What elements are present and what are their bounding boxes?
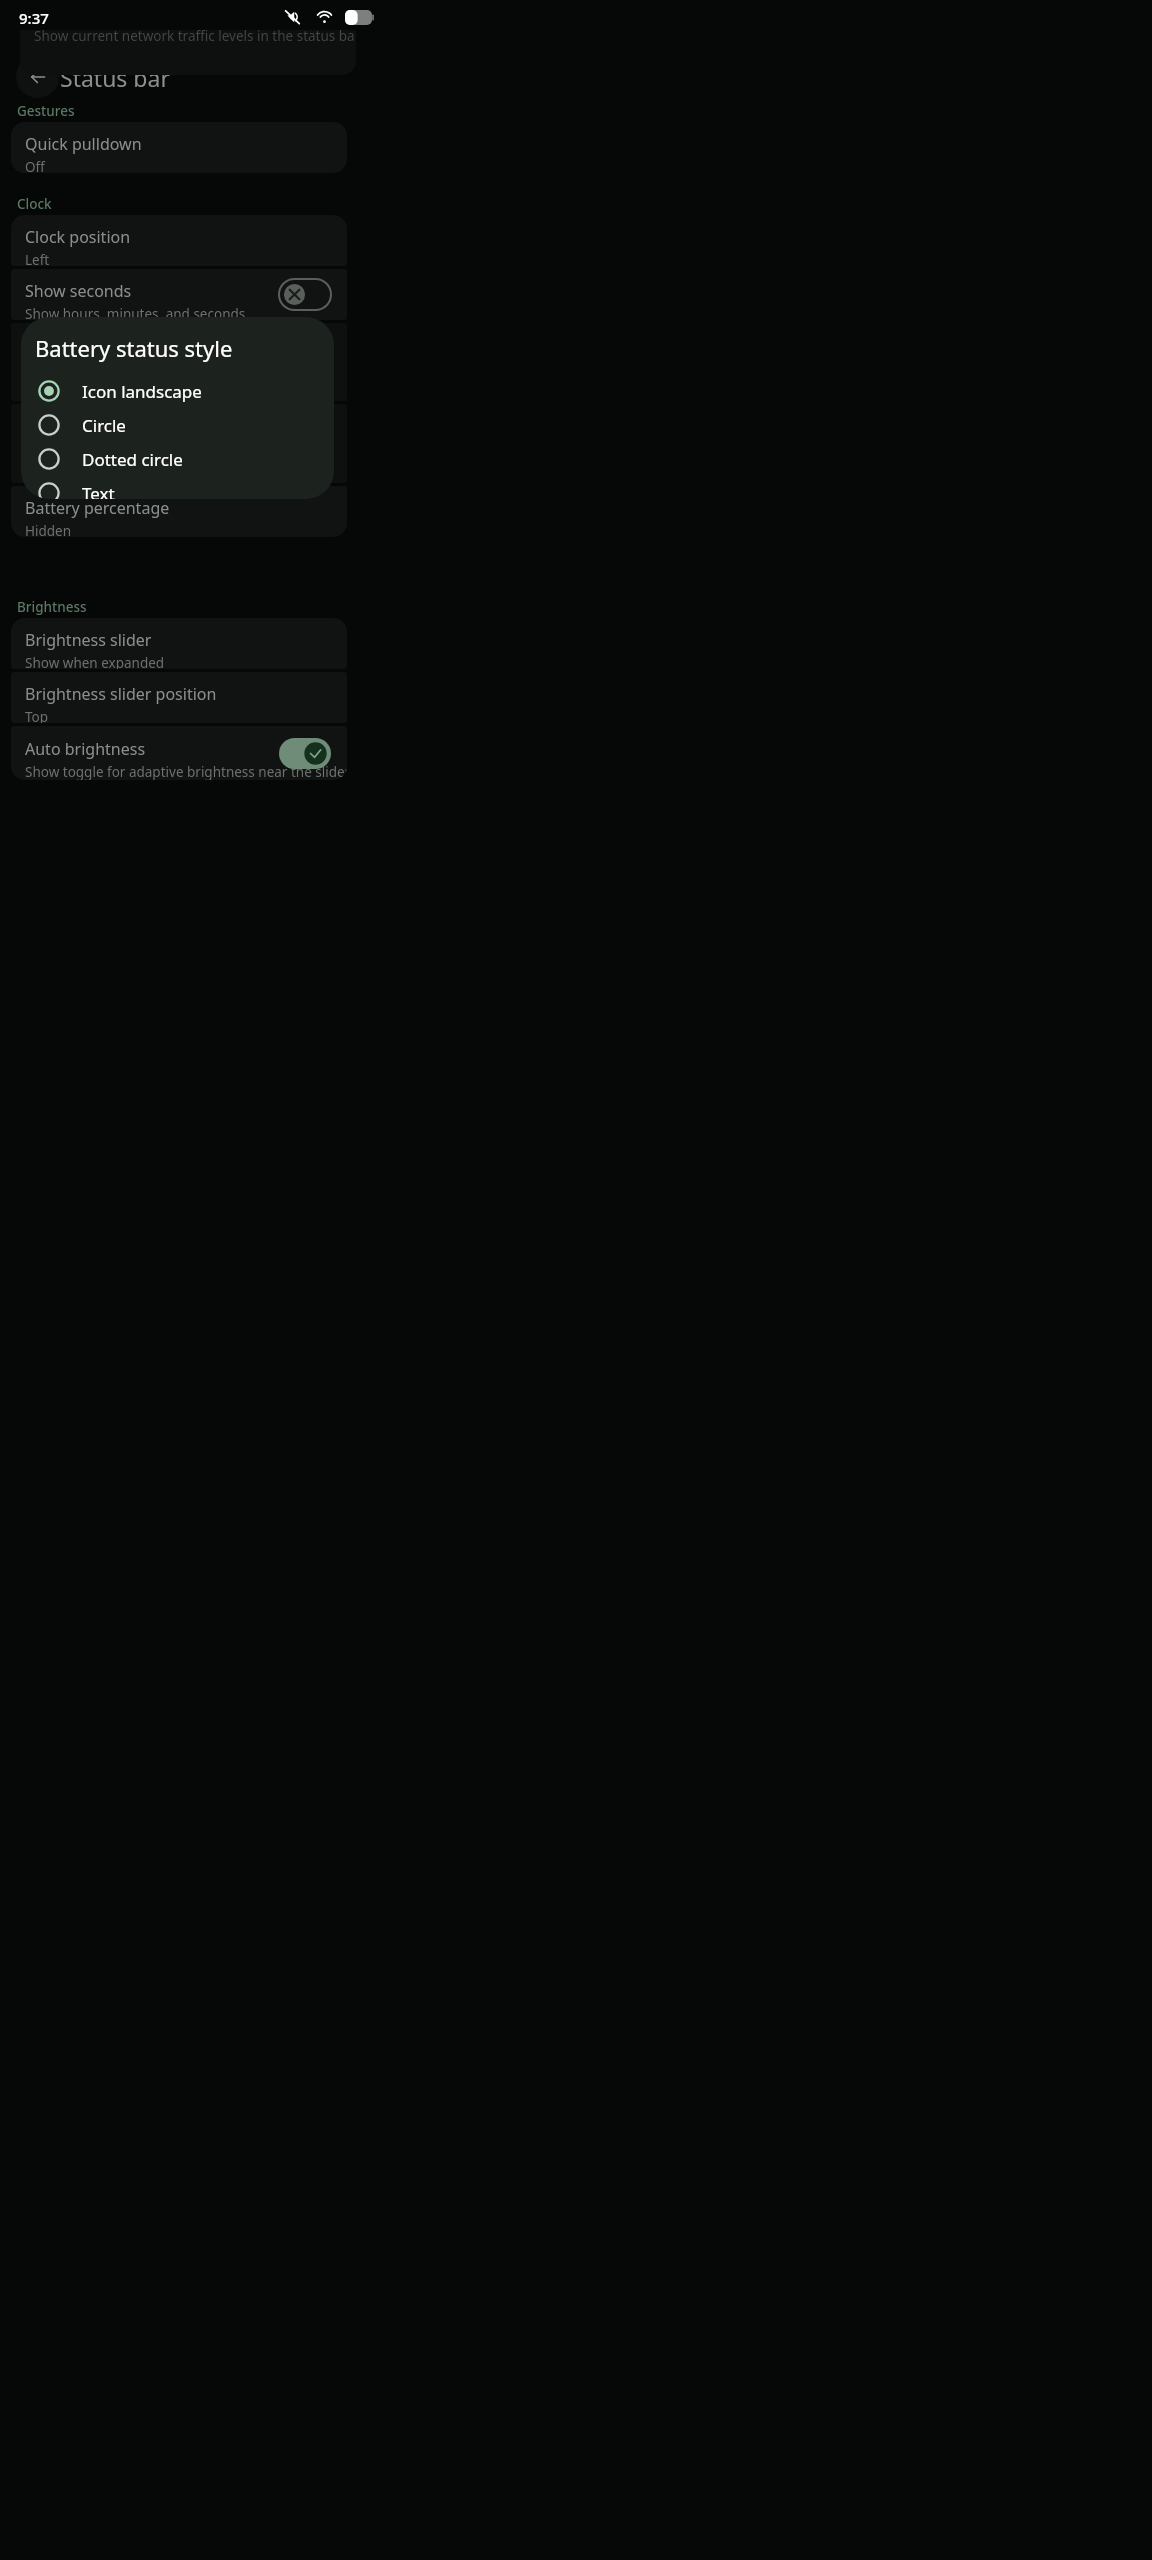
staticText: Gestures <box>17 102 75 120</box>
staticText: Battery percentage <box>25 497 170 519</box>
staticText: Off <box>25 158 45 173</box>
staticText: Icon landscape <box>82 380 202 403</box>
button[interactable]: Auto brightness toggle, on <box>279 738 331 769</box>
staticText: Quick pulldown <box>25 133 142 155</box>
button[interactable] <box>11 323 347 401</box>
button[interactable]: Icon landscape <box>21 374 334 408</box>
button[interactable]: Auto brightness <box>11 726 347 780</box>
button[interactable]: Dotted circle <box>21 442 334 476</box>
staticText: Text <box>82 482 115 499</box>
staticText: Status bar <box>60 62 170 93</box>
button[interactable]: Text <box>21 476 334 499</box>
button[interactable]: Quick pulldown <box>11 122 347 173</box>
staticText: Dotted circle <box>82 448 183 471</box>
staticText: 9:37 <box>19 8 49 28</box>
button[interactable]: Circle <box>21 408 334 442</box>
staticText: Left <box>25 251 50 266</box>
staticText: Icon landscape <box>25 473 121 483</box>
staticText: Clock position <box>25 226 131 248</box>
button[interactable]: Battery percentage <box>11 486 347 537</box>
button[interactable]: Brightness slider <box>11 618 347 669</box>
staticText: Show seconds <box>25 280 132 302</box>
staticText: Battery status style <box>25 452 169 474</box>
staticText: Brightness slider position <box>25 683 217 705</box>
staticText: Brightness <box>17 598 87 616</box>
button[interactable]: Clock position <box>11 215 347 266</box>
staticText: Show hours, minutes, and seconds <box>25 305 246 320</box>
staticText: Battery status style <box>35 333 233 363</box>
button[interactable]: Show seconds <box>11 269 347 320</box>
staticText: Show when expanded <box>25 654 165 669</box>
staticText: Auto brightness <box>25 738 146 760</box>
button[interactable]: Show seconds toggle, off <box>279 279 331 310</box>
button[interactable]: Show current network traffic levels in t… <box>20 30 356 75</box>
staticText: Top <box>25 708 49 723</box>
staticText: Clock <box>17 195 52 213</box>
staticText: Brightness slider <box>25 629 152 651</box>
button[interactable]: Back <box>16 55 59 98</box>
staticText: Hidden <box>25 522 72 537</box>
staticText: Show current network traffic levels in t… <box>34 30 356 45</box>
button[interactable]: Brightness slider position <box>11 672 347 723</box>
button[interactable]: Battery status style <box>11 404 347 483</box>
staticText: Circle <box>82 414 126 437</box>
staticText: Show toggle for adaptive brightness near… <box>25 763 347 780</box>
